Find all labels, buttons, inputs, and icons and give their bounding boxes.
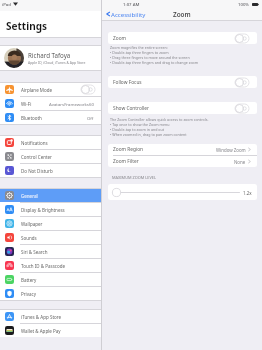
staticText: iTunes & App Store	[21, 314, 62, 320]
staticText: iPad	[2, 1, 11, 7]
button[interactable]: Wallet & Apple Pay	[0, 324, 101, 337]
staticText: Apple ID, iCloud, iTunes & App Store	[28, 60, 86, 65]
staticText: 1:07 AM	[123, 1, 140, 7]
button[interactable]: General	[0, 189, 101, 202]
staticText: Settings	[6, 19, 47, 33]
staticText: Wallpaper	[21, 221, 43, 227]
staticText: Display & Brightness	[21, 207, 65, 213]
staticText: • Double-tap three fingers and drag to c…	[110, 60, 199, 65]
staticText: Airplane Mode	[21, 87, 52, 93]
button[interactable]: Zoom Region	[108, 144, 257, 155]
staticText: Control Center	[21, 154, 52, 160]
staticText: • When zoomed in, drag to pan zoom conte…	[110, 132, 187, 137]
staticText: 100%	[238, 1, 250, 7]
staticText: AvatarsFrameworks60	[49, 101, 94, 107]
button[interactable]: Wallpaper	[0, 217, 101, 230]
staticText: • Double-tap to zoom in and out	[110, 127, 164, 132]
staticText: Zoom	[173, 10, 191, 19]
button[interactable]: Toggle	[235, 78, 249, 87]
button[interactable]: Toggle	[235, 104, 249, 113]
button[interactable]: Control Center	[0, 150, 101, 163]
staticText: Accessibility	[111, 10, 146, 18]
staticText: Zoom Filter	[113, 158, 139, 165]
staticText: Richard Tafoya	[28, 51, 71, 59]
staticText: Battery	[21, 277, 37, 283]
staticText: 1.2x	[243, 190, 252, 196]
staticText: Sounds	[21, 235, 37, 241]
button[interactable]: Airplane Mode	[0, 83, 101, 96]
staticText: Window Zoom	[216, 147, 246, 153]
button[interactable]: Siri & Search	[0, 245, 101, 258]
staticText: Notifications	[21, 140, 48, 146]
button[interactable]: Show Controller	[108, 102, 257, 114]
button[interactable]: Accessibility	[106, 10, 146, 18]
staticText: Off	[87, 115, 94, 121]
staticText: • Tap once to show the Zoom menu	[110, 122, 170, 127]
staticText: Do Not Disturb	[21, 168, 53, 174]
staticText: Follow Focus	[113, 79, 142, 86]
button[interactable]: Battery	[0, 273, 101, 286]
button[interactable]: Zoom Filter	[108, 156, 257, 167]
staticText: Bluetooth	[21, 115, 42, 121]
staticText: Siri & Search	[21, 249, 48, 255]
button[interactable]: Follow Focus	[108, 76, 257, 88]
button[interactable]: Notifications	[0, 136, 101, 149]
button[interactable]: Do Not Disturb	[0, 164, 101, 177]
staticText: • Double-tap three fingers to zoom	[110, 50, 169, 55]
staticText: Zoom magnifies the entire screen:	[110, 45, 168, 50]
staticText: Zoom	[113, 35, 127, 42]
button[interactable]: Bluetooth	[0, 111, 101, 124]
button[interactable]: Privacy	[0, 287, 101, 300]
staticText: • Drag three fingers to move around the …	[110, 55, 190, 60]
staticText: Privacy	[21, 291, 37, 297]
staticText: The Zoom Controller allows quick access …	[110, 117, 209, 122]
staticText: Touch ID & Passcode	[21, 263, 65, 269]
staticText: Wi-Fi	[21, 101, 32, 107]
button[interactable]: iTunes & App Store	[0, 310, 101, 323]
button[interactable]: Touch ID & Passcode	[0, 259, 101, 272]
staticText: Zoom Region	[113, 146, 144, 153]
button[interactable]: Toggle	[235, 34, 249, 43]
button[interactable]: Toggle	[81, 85, 95, 94]
staticText: MAXIMUM ZOOM LEVEL	[112, 175, 157, 180]
staticText: Show Controller	[113, 105, 150, 112]
button[interactable]: Richard Tafoya	[0, 46, 101, 70]
button[interactable]: Wi-Fi	[0, 97, 101, 110]
staticText: Wallet & Apple Pay	[21, 328, 61, 334]
staticText: General	[21, 193, 38, 199]
button[interactable]: Display & Brightness	[0, 203, 101, 216]
button[interactable]: Sounds	[0, 231, 101, 244]
staticText: None	[234, 159, 246, 165]
button[interactable]: Zoom	[108, 32, 257, 44]
